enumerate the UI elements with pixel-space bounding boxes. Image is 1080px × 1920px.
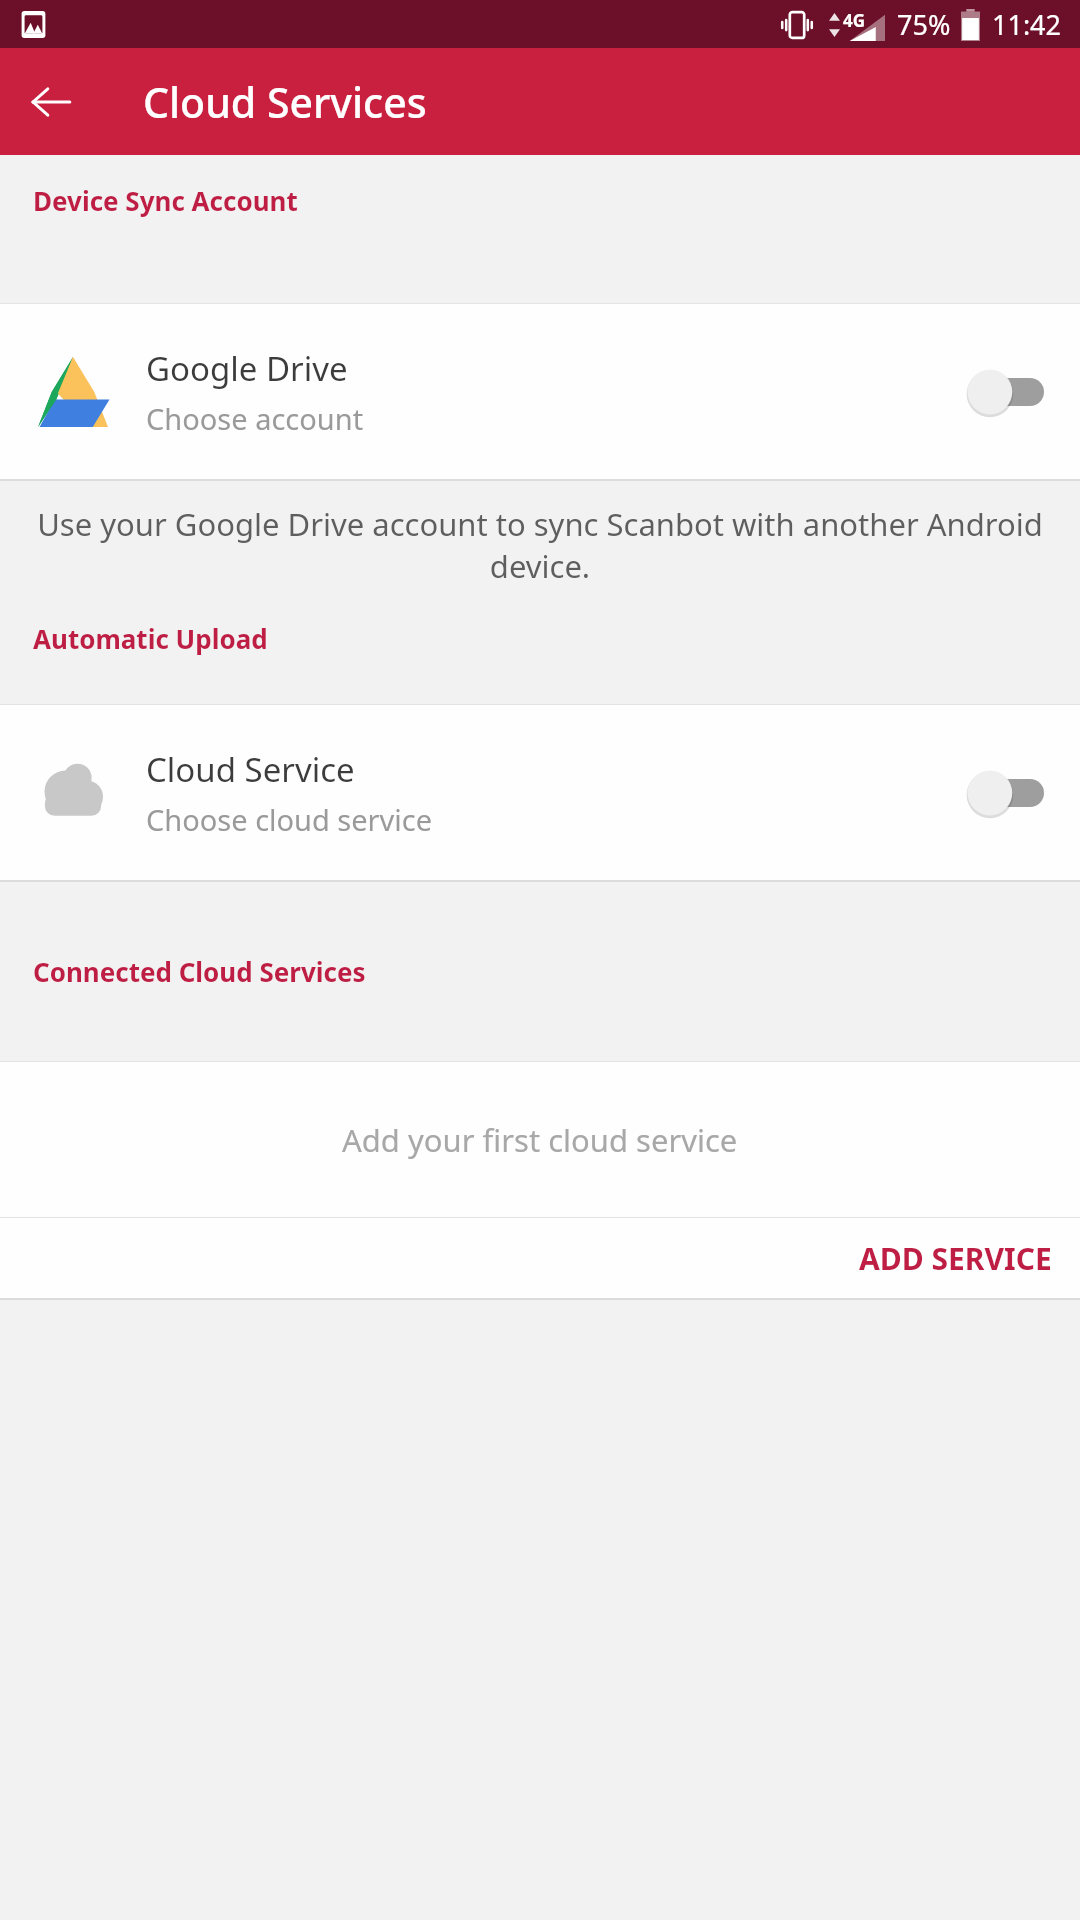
button[interactable]: Toggle Google Drive xyxy=(946,356,1052,428)
button[interactable]: Google Drive xyxy=(0,304,1080,479)
staticText: Choose account xyxy=(146,399,364,438)
staticText: Add your first cloud service xyxy=(342,1119,738,1161)
staticText: 75% xyxy=(897,6,951,43)
staticText: Use your Google Drive account to sync Sc… xyxy=(36,503,1044,587)
staticText: 11:42 xyxy=(992,6,1062,43)
button[interactable]: Back xyxy=(20,71,82,133)
staticText: Connected Cloud Services xyxy=(33,954,366,989)
staticText: Google Drive xyxy=(146,346,348,391)
staticText: ADD SERVICE xyxy=(859,1238,1052,1279)
button[interactable]: Toggle Cloud Service xyxy=(946,757,1052,829)
staticText: Choose cloud service xyxy=(146,800,433,839)
staticText: Automatic Upload xyxy=(33,621,268,656)
staticText: Device Sync Account xyxy=(33,183,298,218)
staticText: 4G xyxy=(843,9,866,32)
button[interactable]: ADD SERVICE xyxy=(831,1224,1080,1293)
button[interactable]: Cloud Service xyxy=(0,705,1080,880)
staticText: Cloud Services xyxy=(143,74,427,130)
staticText: Cloud Service xyxy=(146,747,355,792)
